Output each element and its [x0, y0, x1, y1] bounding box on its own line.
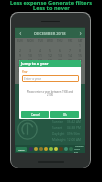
staticText: Cancel [31, 113, 40, 117]
button[interactable]: Action [64, 147, 68, 151]
button[interactable] [45, 73, 55, 78]
button[interactable]: Action [49, 147, 53, 151]
button[interactable]: Action [69, 147, 73, 151]
button[interactable]: 12 [45, 53, 55, 58]
button[interactable]: Action [29, 147, 33, 151]
button[interactable]: 10 [25, 53, 35, 58]
staticText: 24 [28, 63, 32, 68]
button[interactable]: 5 [45, 48, 55, 53]
staticText: DECEMBER 2018 [34, 31, 66, 36]
button[interactable]: 25 [35, 63, 45, 68]
button[interactable]: 3 [25, 48, 35, 53]
button[interactable]: Action [44, 147, 48, 151]
button[interactable] [75, 73, 85, 78]
staticText: SUN [17, 39, 23, 43]
button[interactable] [55, 78, 65, 83]
button[interactable]: Sunset [52, 125, 81, 131]
staticText: 10 [28, 53, 32, 58]
staticText: Please enter a year between 1900 and 210… [26, 90, 74, 96]
button[interactable]: 22 [75, 58, 85, 63]
button[interactable]: 7 [65, 48, 75, 53]
button[interactable]: Action [59, 147, 63, 151]
staticText: 13 [58, 53, 62, 58]
button[interactable]: Today [18, 147, 25, 152]
staticText: Jump to a year [21, 61, 49, 66]
staticText: 22 [78, 58, 82, 63]
button[interactable]: 2 [15, 48, 25, 53]
button[interactable]: Daylight [52, 131, 81, 137]
button[interactable] [15, 73, 25, 78]
button[interactable]: 13 [55, 53, 65, 58]
button[interactable]: 27 [55, 63, 65, 68]
button[interactable] [75, 68, 85, 73]
button[interactable]: Previous month [15, 28, 25, 38]
button[interactable]: Action [39, 147, 43, 151]
staticText: TUE [38, 39, 43, 43]
button[interactable] [55, 73, 65, 78]
staticText: 7 [69, 48, 71, 53]
button[interactable]: 26 [45, 63, 55, 68]
staticText: 8 [79, 48, 81, 53]
button[interactable]: Midnight [52, 137, 81, 143]
button[interactable]: 20 [55, 58, 65, 63]
staticText: Sunrise [52, 120, 64, 124]
staticText: 06:42 AM [67, 120, 81, 124]
staticText: Ok [63, 113, 67, 117]
staticText: 04:38 PM [67, 126, 81, 130]
staticText: 25 [38, 63, 42, 68]
staticText: 09h 56m [67, 132, 81, 136]
button[interactable] [25, 73, 35, 78]
button[interactable] [65, 78, 75, 83]
button[interactable]: 31 [25, 68, 35, 73]
button[interactable]: 16 [15, 58, 25, 63]
button[interactable]: Action [54, 147, 58, 151]
staticText: Today [18, 148, 25, 151]
staticText: 15 [78, 53, 82, 58]
button[interactable]: 21 [65, 58, 75, 63]
button[interactable] [75, 78, 85, 83]
button[interactable] [45, 78, 55, 83]
button[interactable]: 17 [25, 58, 35, 63]
staticText: Midnight [52, 138, 66, 142]
button[interactable]: Enter a year [24, 75, 79, 82]
button[interactable]: Sunrise [52, 119, 81, 125]
staticText: 4 [39, 48, 41, 53]
staticText: Less to never [33, 4, 70, 12]
button[interactable]: Ok [50, 111, 79, 118]
button[interactable]: Cancel [21, 111, 49, 118]
button[interactable]: 30 [15, 68, 25, 73]
button[interactable]: 28 [65, 63, 75, 68]
button[interactable] [15, 78, 25, 83]
button[interactable]: 19 [45, 58, 55, 63]
button[interactable]: 18 [35, 58, 45, 63]
button[interactable]: 6 [55, 48, 65, 53]
button[interactable]: Action [34, 147, 38, 151]
button[interactable]: 4 [35, 48, 45, 53]
button[interactable]: Next month [75, 28, 85, 38]
button[interactable] [25, 78, 35, 83]
button[interactable]: 11 [35, 53, 45, 58]
button[interactable]: 9 [15, 53, 25, 58]
button[interactable]: 8 [75, 48, 85, 53]
button[interactable]: 24 [25, 63, 35, 68]
staticText: Daylight [52, 132, 65, 136]
staticText: 9 [19, 53, 21, 58]
button[interactable] [65, 73, 75, 78]
button[interactable] [35, 73, 45, 78]
button[interactable]: 14 [65, 53, 75, 58]
button[interactable]: 29 [75, 63, 85, 68]
button[interactable]: 23 [15, 63, 25, 68]
button[interactable] [35, 78, 45, 83]
button[interactable]: 15 [75, 53, 85, 58]
